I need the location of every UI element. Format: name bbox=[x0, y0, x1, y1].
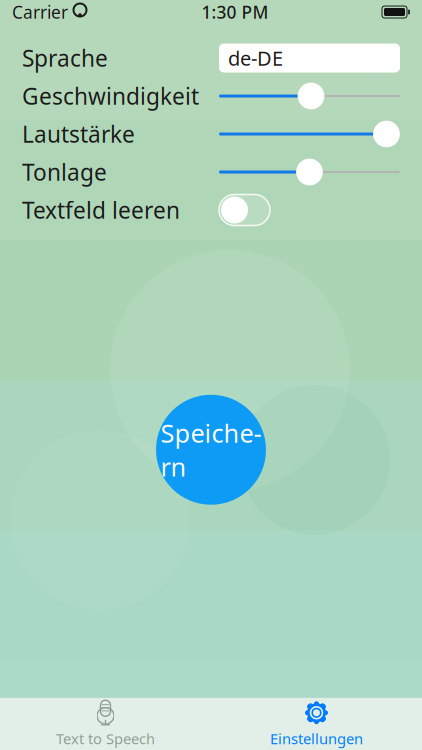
staticText: Lautstärke bbox=[22, 119, 135, 149]
staticText: Text to Speech bbox=[56, 729, 155, 748]
staticText: Carrier bbox=[12, 0, 68, 23]
button[interactable]: Textfeld leeren toggle bbox=[219, 194, 270, 225]
staticText: Einstellungen bbox=[270, 729, 363, 748]
button[interactable]: Einstellungen bbox=[211, 698, 422, 750]
button[interactable]: Slider bbox=[219, 157, 400, 187]
button[interactable]: Slider bbox=[219, 81, 400, 111]
staticText: Textfeld leeren bbox=[22, 195, 180, 225]
staticText: Sprache bbox=[22, 43, 108, 73]
staticText: Speichern bbox=[160, 416, 261, 483]
staticText: Geschwindigkeit bbox=[22, 81, 199, 111]
staticText: de-DE bbox=[228, 45, 283, 71]
staticText: Tonlage bbox=[22, 157, 107, 187]
staticText: 1:30 PM bbox=[201, 0, 268, 23]
button[interactable]: Slider bbox=[219, 119, 400, 149]
button[interactable]: Text to Speech bbox=[0, 698, 211, 750]
button[interactable]: de-DE bbox=[219, 43, 400, 72]
button[interactable]: Speichern bbox=[156, 395, 266, 505]
